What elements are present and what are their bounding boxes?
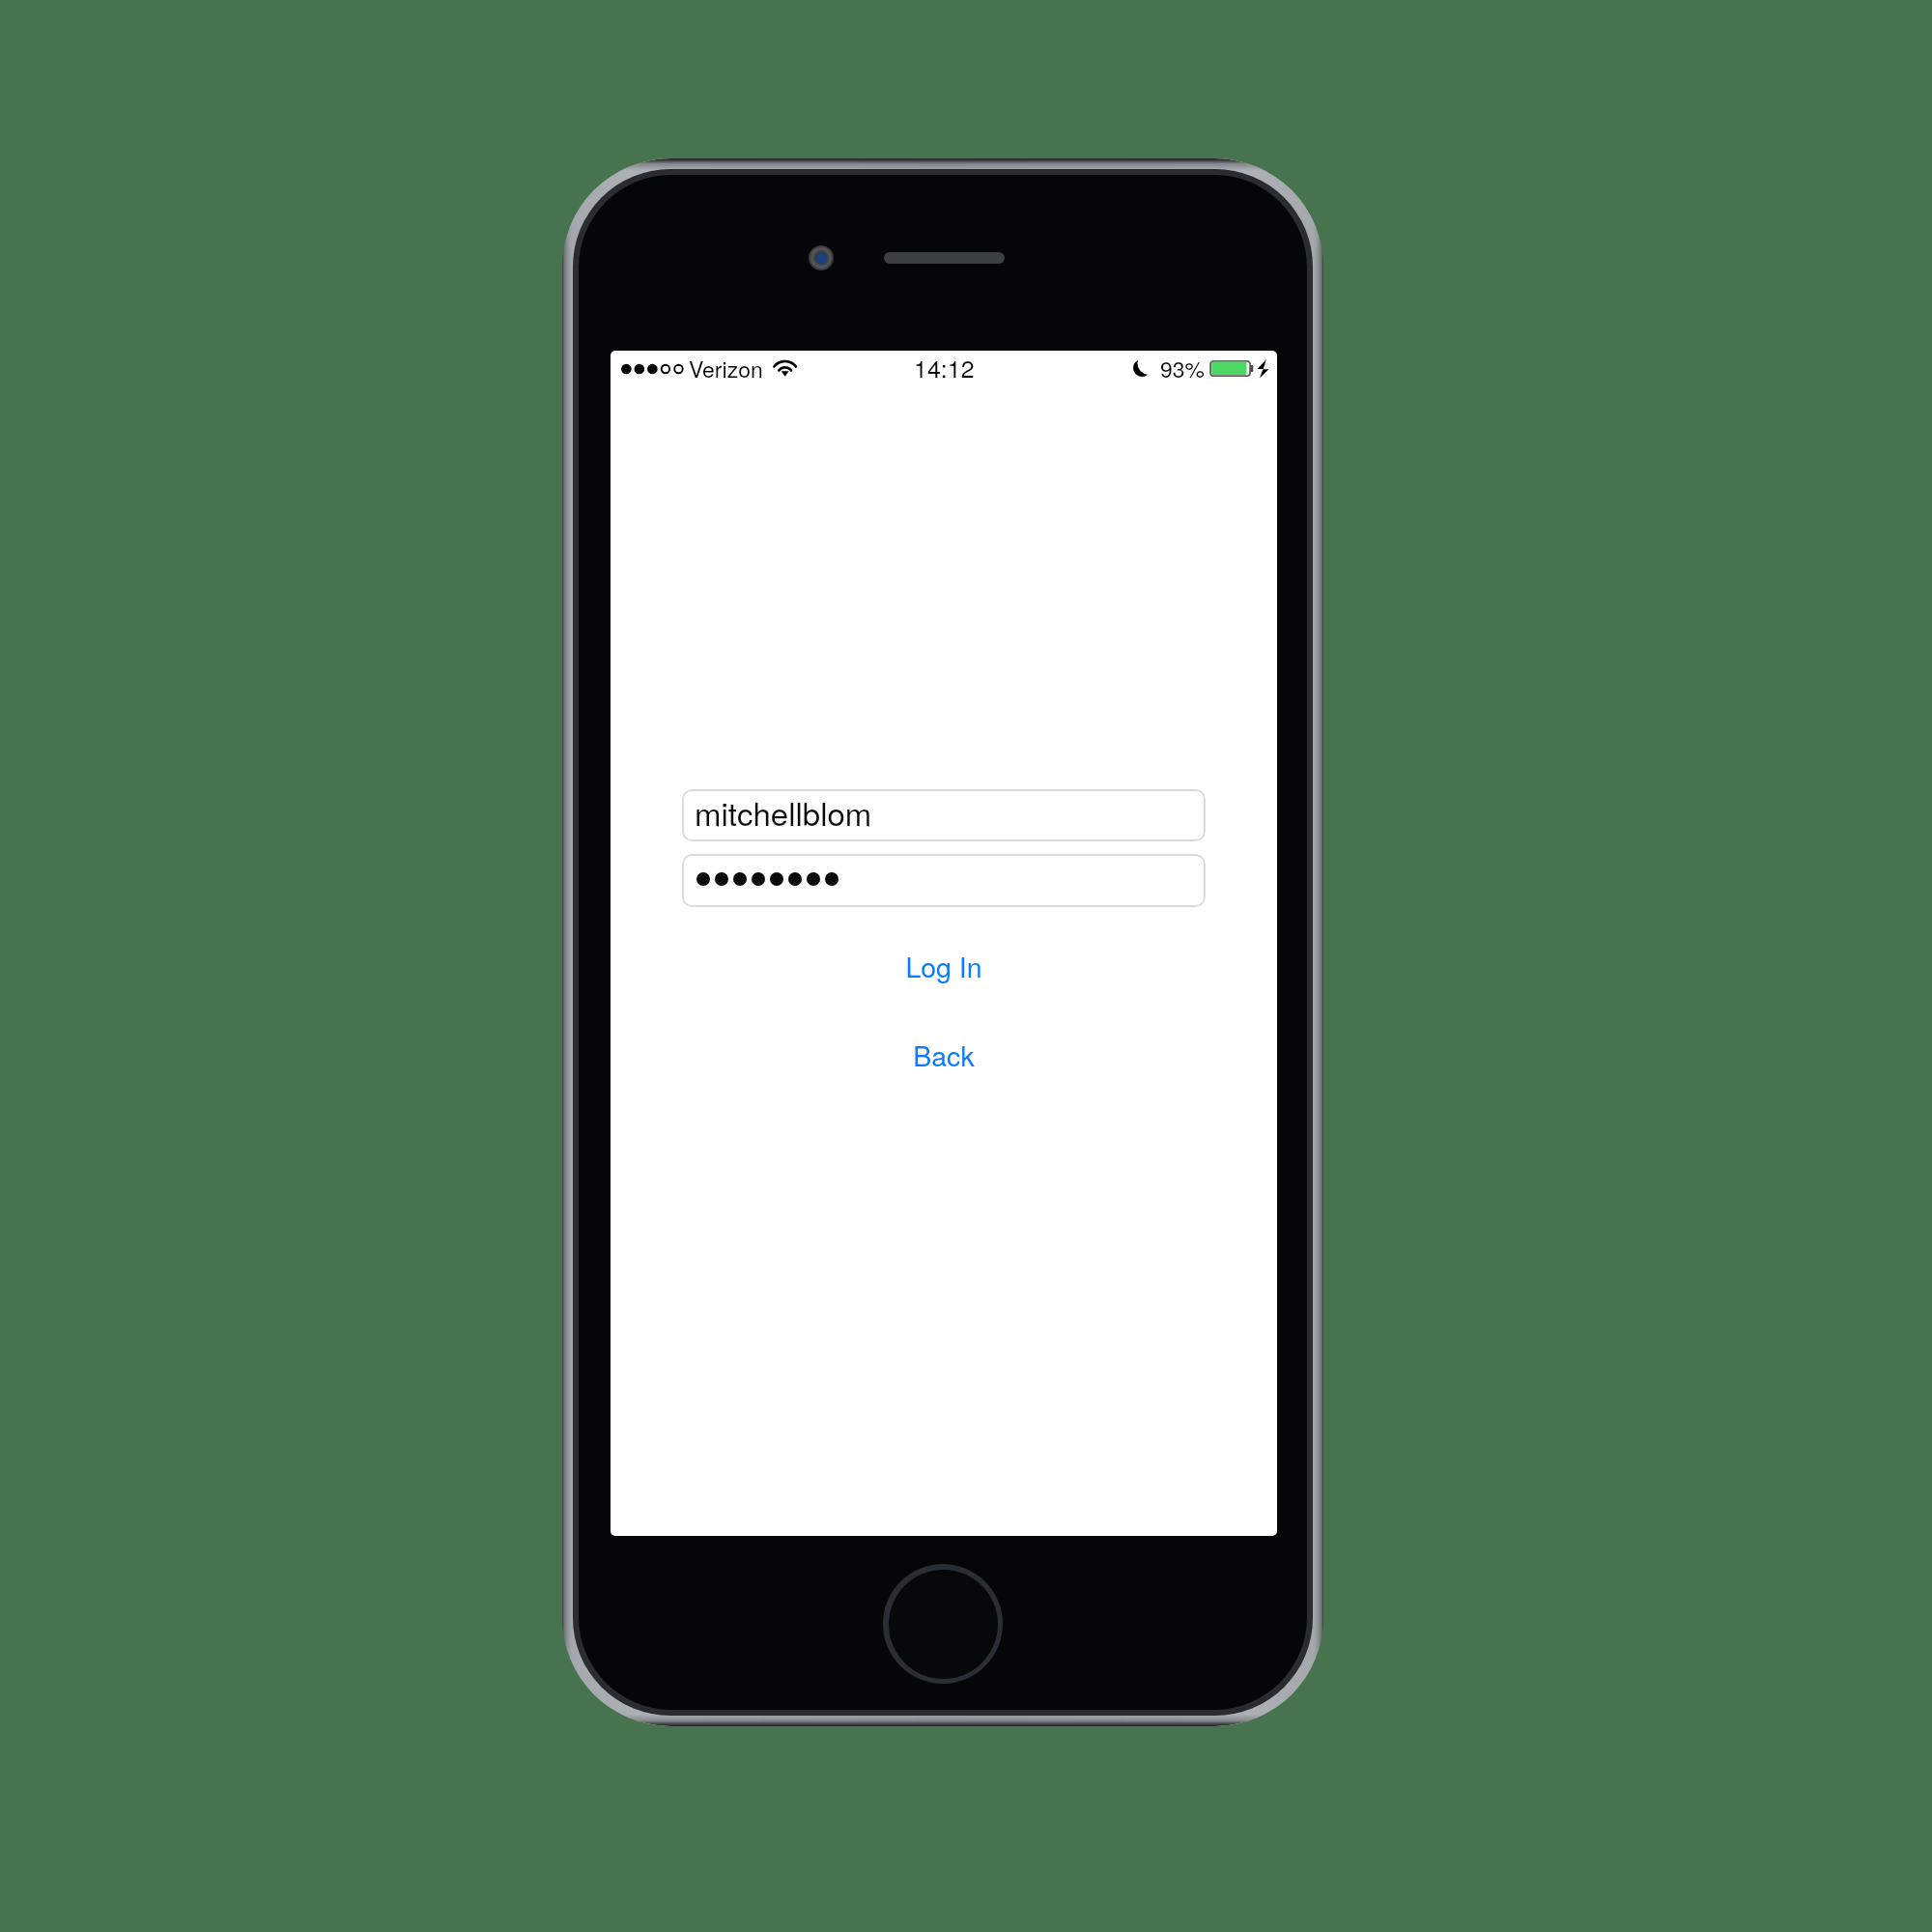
- other: Signal strength 3 of 5: [621, 360, 683, 378]
- button[interactable]: [682, 854, 1206, 907]
- staticText: 93%: [1160, 353, 1206, 384]
- staticText: mitchellblom: [695, 789, 872, 835]
- other: Do not disturb: [1133, 359, 1151, 377]
- button[interactable]: Log In: [847, 936, 1040, 998]
- other: Wi-Fi: [773, 358, 798, 378]
- staticText: Back: [913, 1035, 975, 1074]
- other: Battery 93 percent: [1209, 359, 1254, 378]
- button[interactable]: Back: [847, 1025, 1040, 1087]
- staticText: Verizon: [689, 353, 763, 384]
- other: Charging: [1257, 358, 1269, 379]
- staticText: Log In: [905, 946, 982, 985]
- staticText: 14:12: [914, 351, 975, 384]
- button[interactable]: mitchellblom: [682, 789, 1206, 841]
